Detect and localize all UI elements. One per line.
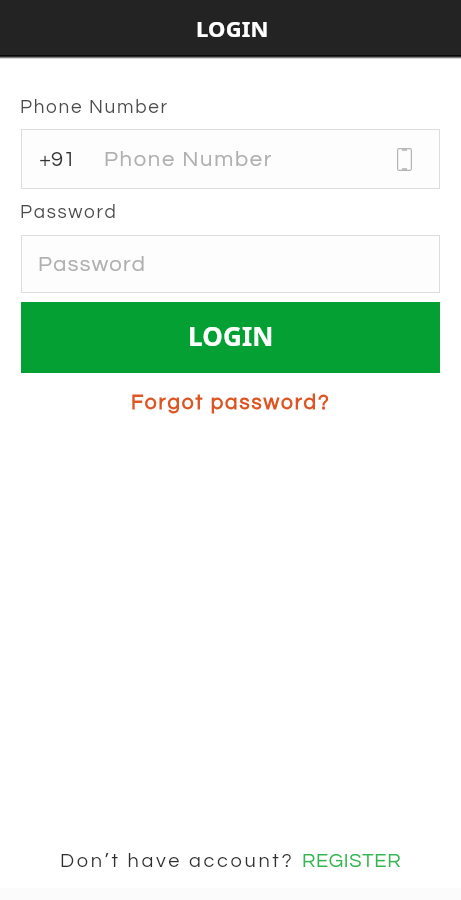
staticText: Phone Number [20, 97, 169, 117]
button[interactable]: Forgot password? [125, 389, 337, 417]
button[interactable]: LOGIN [21, 302, 440, 373]
staticText: Password [20, 202, 118, 222]
staticText: LOGIN [196, 13, 269, 43]
staticText: Don’t have account? [60, 851, 295, 872]
other: Phone number [397, 148, 412, 171]
button[interactable]: REGISTER [302, 851, 402, 872]
staticText: Password [38, 253, 147, 276]
staticText: LOGIN [188, 318, 274, 353]
staticText: +91 [39, 148, 76, 171]
button[interactable]: Password [21, 235, 440, 293]
staticText: Phone Number [104, 148, 274, 171]
button[interactable]: +91 [21, 129, 440, 189]
